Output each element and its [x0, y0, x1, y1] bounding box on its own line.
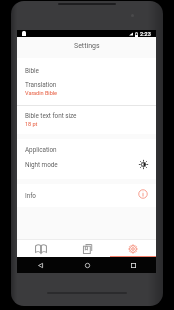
staticText: Settings	[74, 42, 100, 50]
button[interactable]: Info	[17, 184, 156, 207]
staticText: Bible	[25, 67, 39, 75]
other: Info	[138, 189, 148, 199]
other: Back	[38, 263, 43, 268]
button[interactable]: Bible text font size	[17, 106, 156, 134]
staticText: Night mode	[25, 161, 58, 169]
button[interactable]: Read	[17, 240, 64, 257]
staticText: 18 pt	[25, 121, 38, 128]
button[interactable]: Bookmarks	[64, 240, 110, 257]
staticText: Translation	[25, 81, 57, 89]
button[interactable]: Night mode	[17, 159, 156, 179]
staticText: Varadin Bible	[25, 90, 57, 97]
button[interactable]: Translation	[17, 77, 156, 105]
other: Recents	[131, 263, 136, 268]
staticText: Info	[25, 192, 36, 200]
staticText: Application	[25, 146, 57, 154]
other: Toggle night mode	[139, 160, 148, 169]
staticText: Bible text font size	[25, 112, 77, 120]
button[interactable]: Settings	[110, 240, 156, 257]
other: Home	[85, 263, 90, 268]
staticText: 2:23	[140, 31, 151, 37]
